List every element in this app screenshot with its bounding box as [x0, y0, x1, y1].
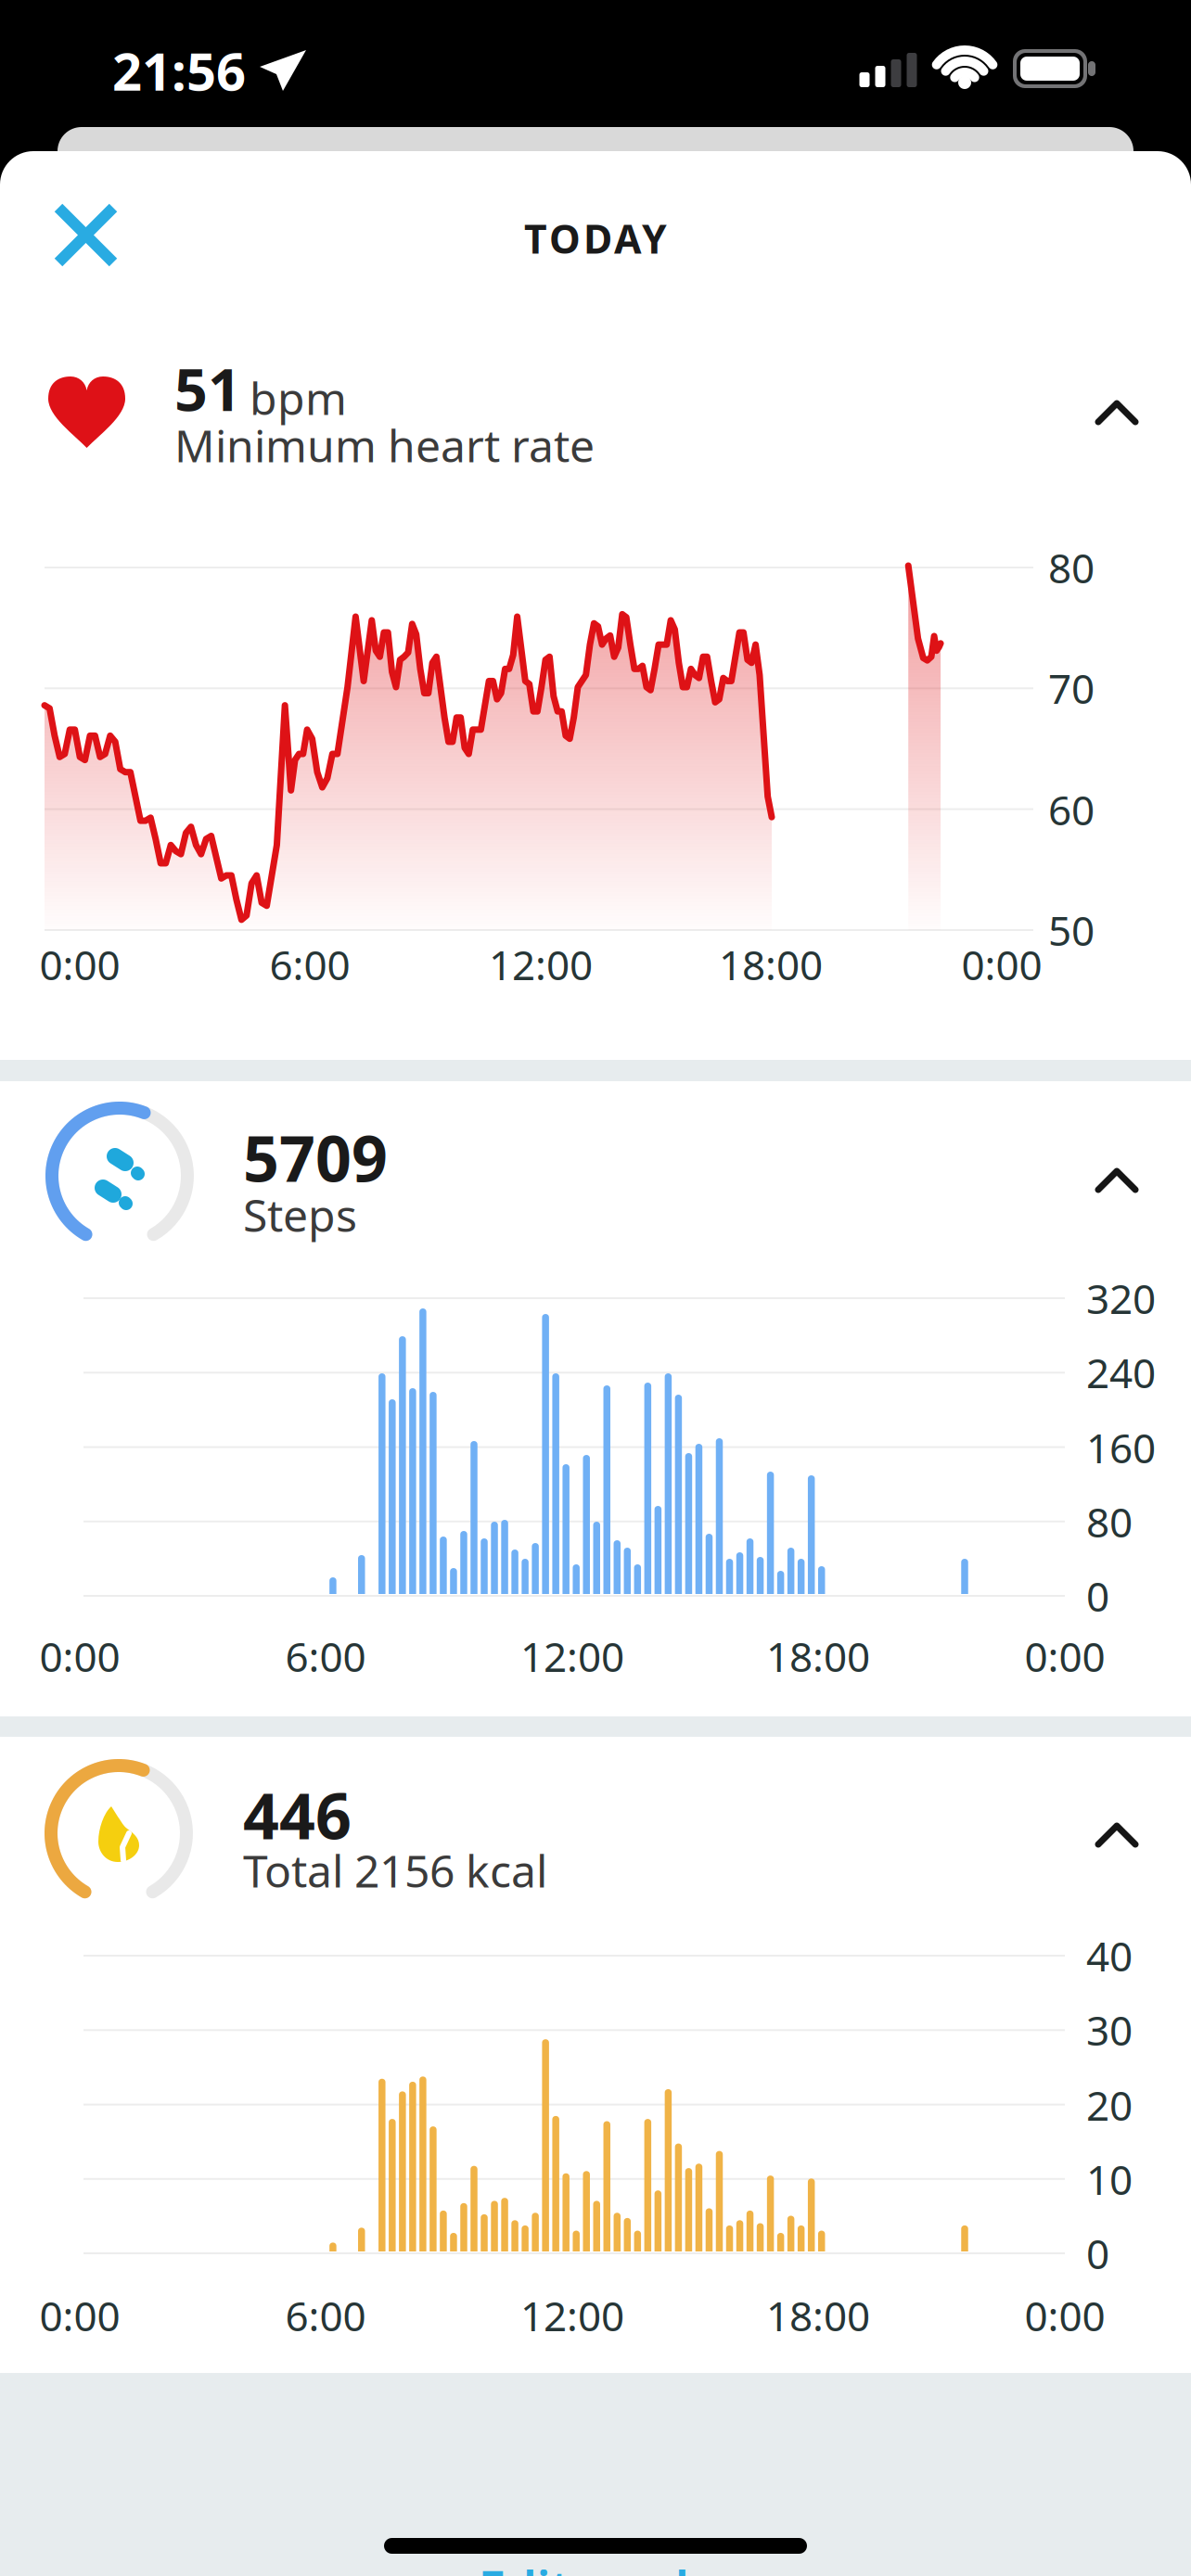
- staticText: TODAY: [524, 212, 667, 265]
- staticText: 12:00: [489, 937, 593, 991]
- staticText: 20: [1086, 2078, 1133, 2132]
- staticText: 320: [1086, 1271, 1156, 1325]
- staticText: 12:00: [520, 1629, 624, 1683]
- staticText: Edit cards: [478, 2555, 713, 2576]
- staticText: 0:00: [39, 1629, 120, 1683]
- staticText: 30: [1086, 2003, 1133, 2057]
- button[interactable]: Collapse: [1087, 390, 1146, 435]
- staticText: 80: [1086, 1495, 1133, 1549]
- staticText: Total 2156 kcal: [243, 1841, 547, 1900]
- staticText: 6:00: [285, 1629, 366, 1683]
- staticText: 51: [174, 350, 241, 427]
- staticText: 5709: [243, 1115, 388, 1199]
- staticText: 70: [1048, 661, 1095, 715]
- staticText: 240: [1086, 1345, 1156, 1399]
- button[interactable]: Collapse: [1087, 1813, 1146, 1857]
- staticText: 0:00: [39, 2288, 120, 2343]
- button[interactable]: Close: [58, 208, 113, 262]
- staticText: 12:00: [520, 2288, 624, 2343]
- staticText: 0:00: [1025, 1629, 1105, 1683]
- staticText: 0:00: [39, 937, 120, 991]
- staticText: 60: [1048, 782, 1095, 837]
- staticText: 446: [243, 1773, 352, 1857]
- staticText: 21:56: [112, 36, 246, 105]
- staticText: Steps: [243, 1185, 357, 1244]
- staticText: 0:00: [961, 937, 1042, 991]
- button[interactable]: Edit cards: [478, 2555, 713, 2576]
- staticText: 0: [1086, 1569, 1109, 1623]
- staticText: 80: [1048, 540, 1095, 595]
- staticText: 18:00: [719, 937, 823, 991]
- staticText: bpm: [250, 368, 347, 427]
- staticText: 0:00: [1025, 2288, 1105, 2343]
- staticText: 160: [1086, 1420, 1156, 1475]
- staticText: 50: [1048, 903, 1095, 957]
- staticText: 18:00: [766, 2288, 870, 2343]
- staticText: 6:00: [269, 937, 350, 991]
- staticText: 6:00: [285, 2288, 366, 2343]
- staticText: 10: [1086, 2152, 1133, 2206]
- button[interactable]: Collapse: [1087, 1158, 1146, 1203]
- staticText: 0: [1086, 2226, 1109, 2280]
- staticText: 18:00: [766, 1629, 870, 1683]
- staticText: 40: [1086, 1929, 1133, 1983]
- staticText: Minimum heart rate: [174, 416, 595, 475]
